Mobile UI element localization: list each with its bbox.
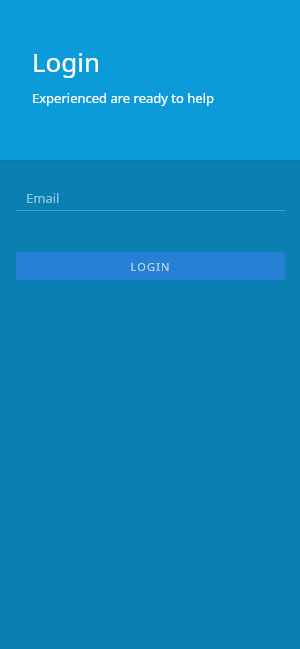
staticText: Experienced are ready to help bbox=[32, 89, 214, 107]
button[interactable]: Email bbox=[0, 174, 300, 222]
staticText: Email bbox=[26, 189, 60, 207]
button[interactable]: LOGIN bbox=[16, 252, 285, 280]
staticText: Login bbox=[32, 44, 101, 79]
staticText: LOGIN bbox=[130, 259, 171, 274]
